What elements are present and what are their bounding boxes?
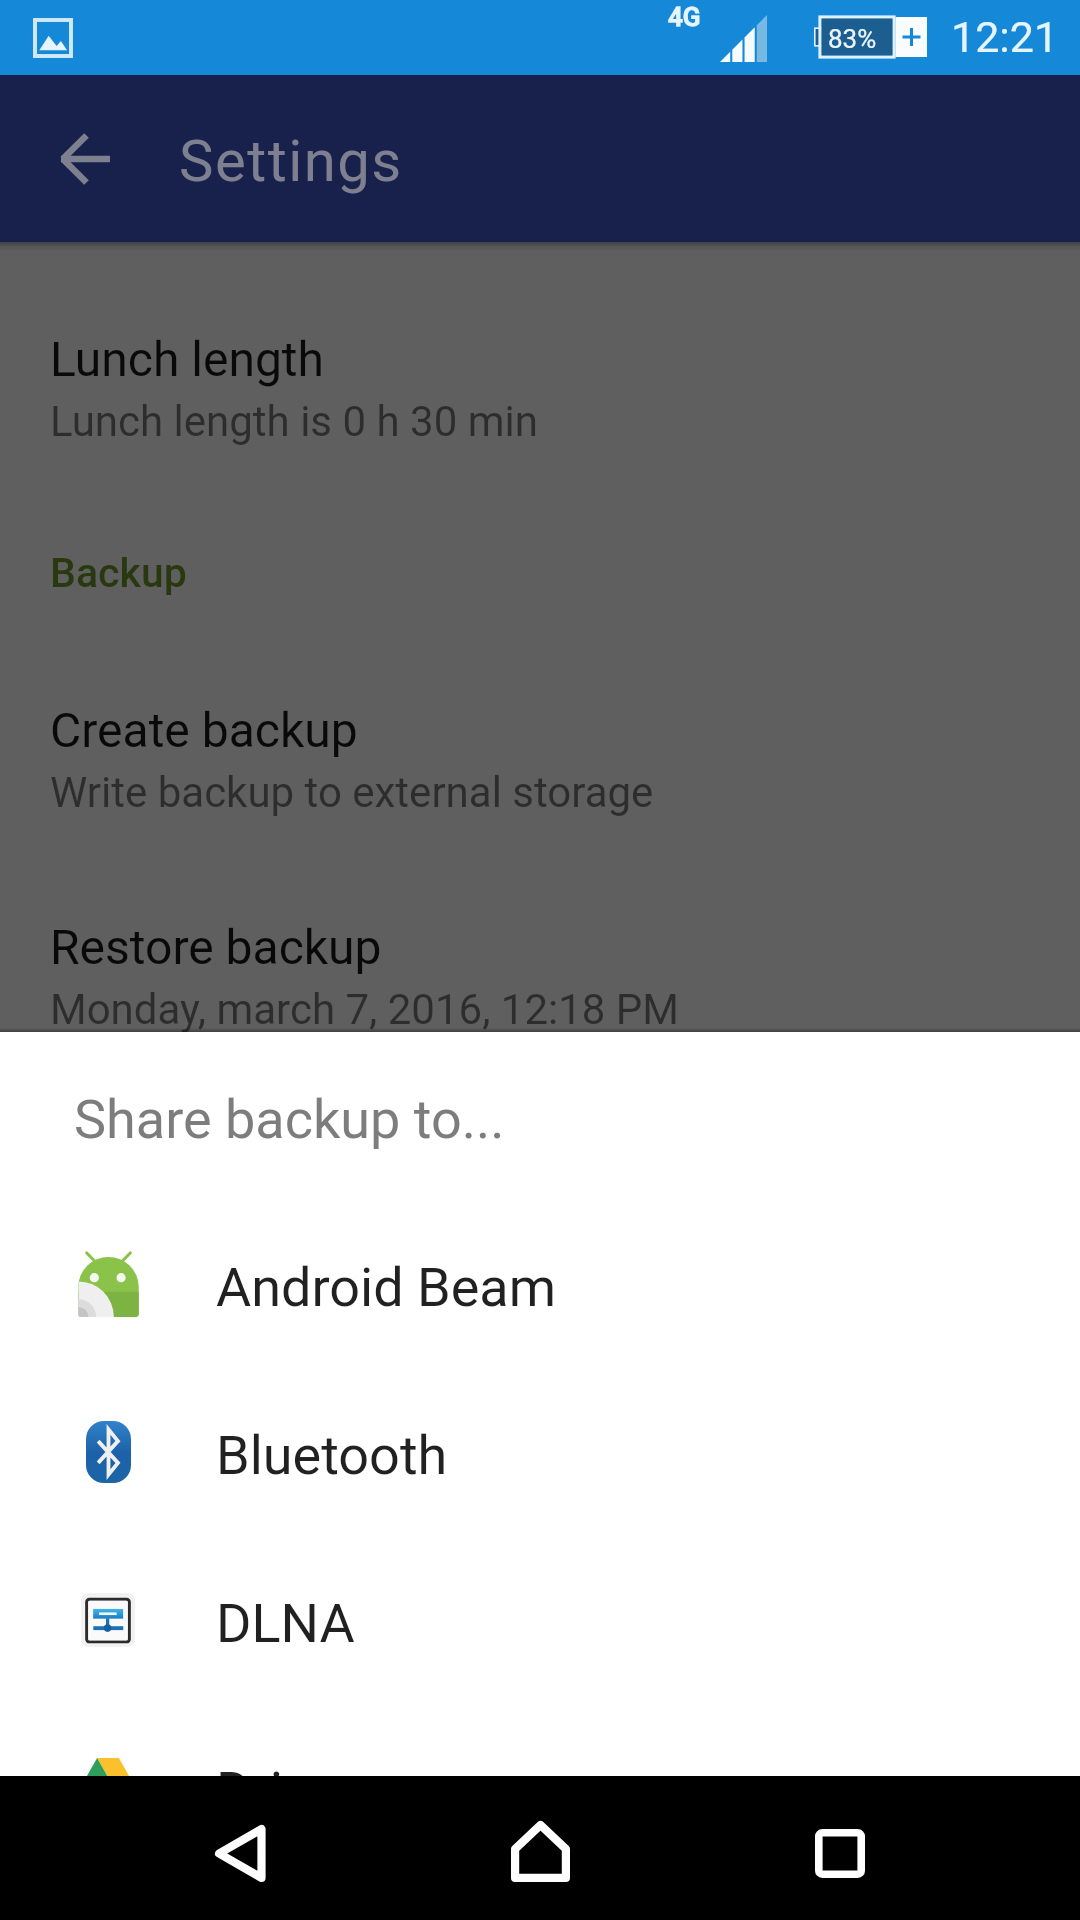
button[interactable]: Drive [0,1707,1080,1875]
staticText: Drive [216,1760,338,1823]
staticText: 12:21 [951,12,1059,62]
staticText: Android Beam [216,1256,557,1319]
staticText: 83% [828,24,877,54]
staticText: Write backup to external storage [50,768,654,817]
staticText: Lunch length [50,331,324,387]
staticText: Monday, march 7, 2016, 12:18 PM [50,985,680,1034]
staticText: Create backup [50,702,358,758]
button[interactable]: Lunch length [0,331,1080,491]
button[interactable]: Back [20,75,150,242]
button[interactable]: Android Beam [0,1203,1080,1371]
button[interactable]: Home [450,1776,630,1920]
button[interactable]: Recent apps [750,1776,930,1920]
staticText: Lunch length is 0 h 30 min [50,397,538,446]
staticText: Bluetooth [216,1424,448,1487]
staticText: Backup [50,549,187,597]
staticText: 4G [668,2,701,32]
button[interactable]: Backup [0,529,1080,617]
button[interactable]: Create backup [0,702,1080,862]
button[interactable]: Back [150,1776,330,1920]
staticText: Share backup to... [74,1088,505,1151]
button[interactable]: DLNA [0,1539,1080,1707]
button[interactable]: Restore backup [0,919,1080,1079]
staticText: Settings [179,127,403,195]
button[interactable]: Bluetooth [0,1371,1080,1539]
staticText: DLNA [216,1592,355,1655]
staticText: Restore backup [50,919,382,975]
